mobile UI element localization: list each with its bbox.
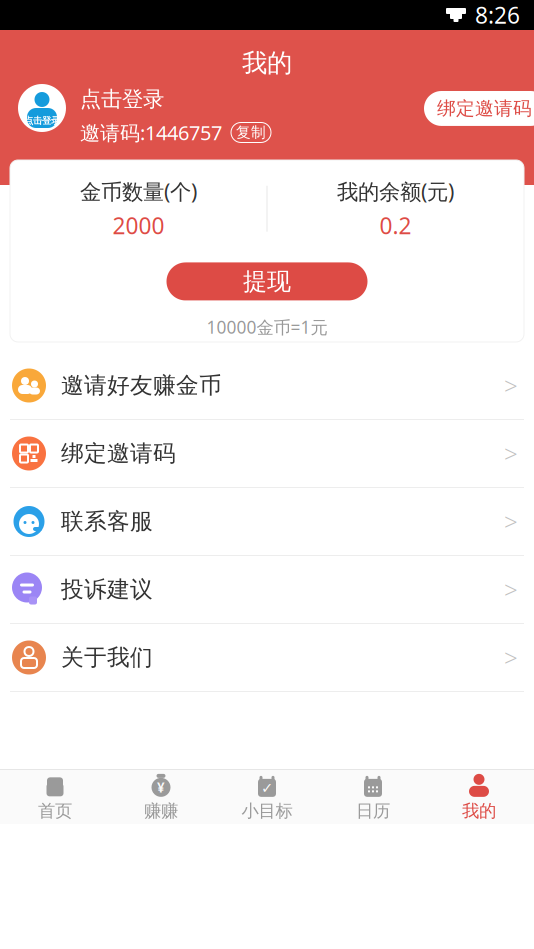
staticText: 0.2 [379, 210, 411, 240]
staticText: 我的余额(元) [337, 177, 454, 205]
staticText: 绑定邀请码 [437, 97, 532, 120]
staticText: 日历 [356, 800, 390, 822]
staticText: > [504, 642, 518, 673]
button[interactable]: 关于我们 [0, 624, 534, 691]
staticText: ¥ [157, 778, 165, 796]
staticText: 小目标 [241, 800, 292, 822]
button[interactable]: 登录头像 [18, 84, 66, 132]
staticText: 点击登录 [80, 86, 164, 112]
staticText: 提现 [243, 267, 291, 296]
button[interactable]: 复制 [231, 122, 271, 142]
staticText: 金币数量(个) [80, 177, 197, 205]
staticText: 点击登录 [24, 115, 60, 126]
staticText: 2000 [112, 210, 164, 240]
button[interactable]: 投诉建议 [0, 556, 534, 623]
staticText: > [504, 574, 518, 605]
button[interactable]: 绑定邀请码 [424, 91, 534, 126]
staticText: 10000金币=1元 [206, 315, 327, 338]
button[interactable]: 联系客服 [0, 488, 534, 555]
staticText: > [504, 506, 518, 537]
staticText: 我的 [462, 800, 496, 822]
staticText: > [504, 370, 518, 401]
button[interactable]: 邀请好友赚金币 [0, 352, 534, 419]
button[interactable]: ✓ [214, 770, 320, 824]
staticText: ✓ [261, 779, 273, 796]
staticText: 联系客服 [61, 508, 153, 535]
staticText: 8:26 [475, 0, 520, 30]
staticText: 邀请码:1446757 [80, 119, 222, 146]
button[interactable]: 提现 [166, 262, 367, 300]
staticText: 复制 [236, 123, 266, 141]
button[interactable]: 日历 [320, 770, 426, 824]
staticText: > [504, 438, 518, 469]
staticText: 我的 [242, 47, 292, 78]
staticText: 邀请好友赚金币 [61, 372, 222, 399]
button[interactable]: 点击登录 [80, 86, 164, 112]
staticText: 绑定邀请码 [61, 440, 176, 467]
button[interactable]: 我的 [426, 770, 532, 824]
staticText: 关于我们 [61, 644, 153, 671]
button[interactable]: ¥ [108, 770, 214, 824]
staticText: 赚赚 [144, 800, 178, 822]
staticText: 首页 [38, 800, 72, 822]
button[interactable]: 首页 [2, 770, 108, 824]
button[interactable]: 绑定邀请码 [0, 420, 534, 487]
staticText: 投诉建议 [61, 576, 153, 603]
